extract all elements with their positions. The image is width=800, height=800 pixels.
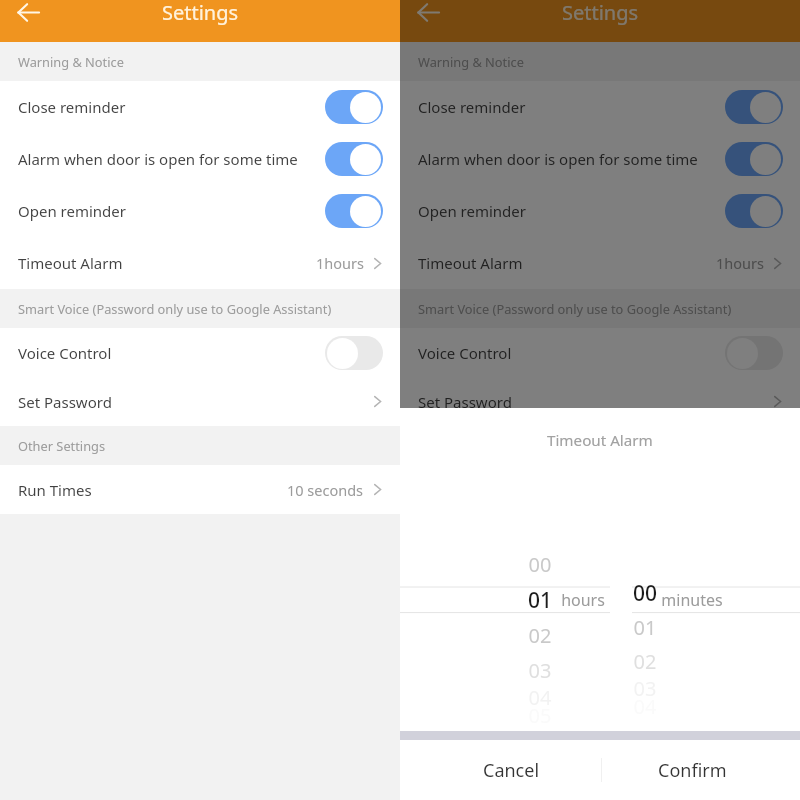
staticText: Set Password bbox=[418, 392, 772, 412]
staticText: 03 bbox=[625, 675, 665, 702]
staticText: 1hours bbox=[716, 253, 764, 273]
staticText: Smart Voice (Password only use to Google… bbox=[418, 300, 732, 317]
staticText: 02 bbox=[520, 622, 560, 649]
staticText: 10 seconds bbox=[287, 480, 364, 500]
staticText: Close reminder bbox=[418, 97, 725, 117]
staticText: Open reminder bbox=[418, 201, 725, 221]
button[interactable]: Minutes picker bbox=[632, 408, 800, 731]
staticText: Open reminder bbox=[18, 201, 325, 221]
button[interactable]: Back bbox=[411, 0, 445, 29]
button[interactable]: Set Password bbox=[0, 377, 400, 426]
button[interactable]: Cancel bbox=[400, 740, 601, 800]
button[interactable]: Off bbox=[725, 336, 783, 370]
staticText: Other Settings bbox=[18, 437, 106, 454]
staticText: Voice Control bbox=[18, 343, 325, 363]
staticText: Alarm when door is open for some time bbox=[18, 149, 325, 169]
staticText: Timeout Alarm bbox=[547, 430, 653, 451]
staticText: 03 bbox=[520, 657, 560, 684]
button[interactable]: Close reminder bbox=[0, 81, 400, 133]
button[interactable]: Off bbox=[325, 336, 383, 370]
button[interactable]: On bbox=[325, 90, 383, 124]
button[interactable]: Confirm bbox=[601, 740, 800, 800]
button[interactable]: Voice Control bbox=[0, 328, 400, 377]
button[interactable]: On bbox=[725, 90, 783, 124]
button[interactable]: On bbox=[725, 194, 783, 228]
button[interactable]: Voice Control bbox=[400, 328, 800, 377]
staticText: 01 bbox=[625, 614, 665, 641]
button[interactable]: Timeout Alarm bbox=[400, 237, 800, 289]
button[interactable]: Dismiss bbox=[400, 0, 800, 800]
staticText: Warning & Notice bbox=[18, 53, 124, 70]
button[interactable]: Alarm when door is open for some time bbox=[400, 133, 800, 185]
staticText: Smart Voice (Password only use to Google… bbox=[18, 300, 332, 317]
button[interactable]: Back bbox=[11, 0, 45, 29]
button[interactable]: Close reminder bbox=[400, 81, 800, 133]
staticText: 1hours bbox=[316, 253, 364, 273]
button[interactable]: Run Times bbox=[0, 465, 400, 514]
button[interactable]: On bbox=[325, 142, 383, 176]
button[interactable]: Timeout Alarm bbox=[0, 237, 400, 289]
staticText: 01 bbox=[520, 586, 560, 615]
staticText: Warning & Notice bbox=[418, 53, 524, 70]
button[interactable]: Set Password bbox=[400, 377, 800, 426]
staticText: hours bbox=[543, 589, 623, 611]
staticText: Confirm bbox=[658, 758, 727, 783]
button[interactable]: Open reminder bbox=[0, 185, 400, 237]
staticText: Cancel bbox=[483, 758, 540, 783]
staticText: 04 bbox=[520, 684, 560, 711]
staticText: 00 bbox=[625, 579, 665, 608]
button[interactable]: On bbox=[325, 194, 383, 228]
staticText: Timeout Alarm bbox=[18, 253, 316, 273]
staticText: 02 bbox=[625, 648, 665, 675]
button[interactable]: On bbox=[725, 142, 783, 176]
staticText: Settings bbox=[562, 0, 639, 26]
staticText: Voice Control bbox=[418, 343, 725, 363]
staticText: Set Password bbox=[18, 392, 372, 412]
button[interactable]: Open reminder bbox=[400, 185, 800, 237]
staticText: Close reminder bbox=[18, 97, 325, 117]
staticText: Alarm when door is open for some time bbox=[418, 149, 725, 169]
staticText: Timeout Alarm bbox=[418, 253, 716, 273]
button[interactable]: Alarm when door is open for some time bbox=[0, 133, 400, 185]
staticText: 00 bbox=[520, 551, 560, 578]
staticText: Run Times bbox=[18, 480, 287, 500]
staticText: Settings bbox=[162, 0, 239, 26]
button[interactable]: Hours picker bbox=[400, 408, 610, 731]
staticText: minutes bbox=[652, 589, 732, 611]
